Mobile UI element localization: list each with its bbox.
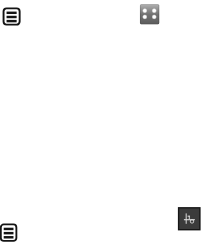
button[interactable]: List view [0,223,18,242]
button[interactable]: List view [2,7,21,26]
button[interactable]: Apps grid [140,4,160,25]
button[interactable]: Edit tool [177,207,201,231]
